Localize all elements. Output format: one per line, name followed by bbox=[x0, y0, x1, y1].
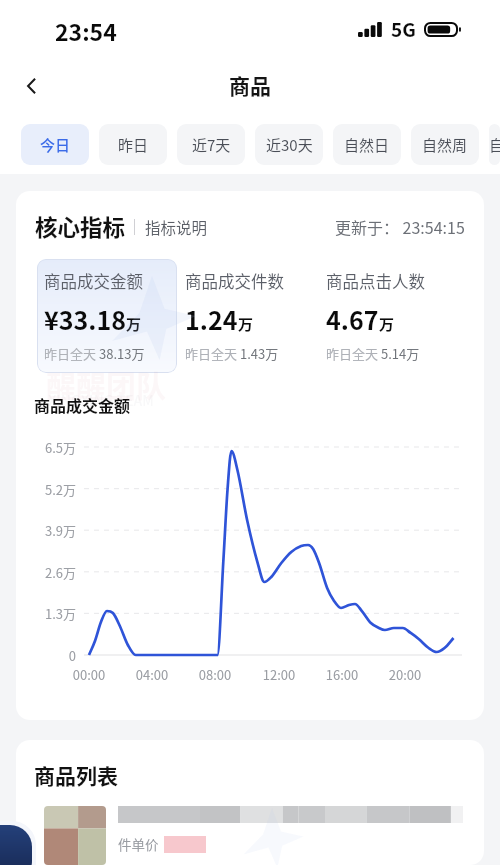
staticText: 商品成交金额 bbox=[34, 393, 131, 416]
staticText: 04:00 bbox=[130, 665, 174, 684]
button[interactable]: 近30天 bbox=[255, 124, 323, 165]
staticText: 2.6万 bbox=[16, 563, 76, 582]
staticText: 昨日全天 bbox=[185, 344, 240, 363]
staticText: 万 bbox=[126, 313, 142, 335]
staticText: 1.24 bbox=[185, 301, 238, 337]
staticText: 近7天 bbox=[192, 134, 231, 156]
button[interactable]: 近7天 bbox=[177, 124, 245, 165]
staticText: 更新于： 23:54:15 bbox=[335, 215, 465, 238]
staticText: 38.13万 bbox=[99, 344, 145, 363]
staticText: 昨日全天 bbox=[44, 344, 99, 363]
staticText: 万 bbox=[379, 313, 395, 335]
staticText: 16:00 bbox=[320, 665, 364, 684]
staticText: 3.9万 bbox=[16, 521, 76, 540]
button[interactable]: 商品成交件数 bbox=[178, 259, 319, 373]
staticText: 昨日 bbox=[118, 134, 149, 156]
staticText: 今日 bbox=[40, 134, 71, 156]
staticText: 近30天 bbox=[266, 134, 313, 156]
staticText: 08:00 bbox=[193, 665, 237, 684]
staticText: 5.14万 bbox=[381, 344, 420, 363]
staticText: 5.2万 bbox=[16, 480, 76, 499]
staticText: 商品列表 bbox=[34, 760, 118, 790]
staticText: 醒醒团队 bbox=[46, 362, 166, 405]
staticText: 商品成交件数 bbox=[185, 269, 284, 293]
button[interactable]: Back bbox=[14, 68, 50, 104]
button[interactable]: 自然月 bbox=[489, 124, 500, 165]
staticText: 核心指标 bbox=[35, 210, 126, 243]
staticText: 商品成交金额 bbox=[44, 269, 143, 293]
staticText: 0 bbox=[16, 646, 76, 665]
staticText: 自然月 bbox=[489, 134, 500, 156]
staticText: 20:00 bbox=[383, 665, 427, 684]
staticText: 商品点击人数 bbox=[326, 269, 425, 293]
button[interactable]: 自然日 bbox=[333, 124, 401, 165]
staticText: XINGXING TEAM bbox=[48, 390, 154, 410]
staticText: 自然周 bbox=[422, 134, 468, 156]
staticText: 00:00 bbox=[67, 665, 111, 684]
button[interactable]: 件单价 bbox=[44, 806, 484, 865]
button[interactable]: 今日 bbox=[21, 124, 89, 165]
staticText: ¥33.18 bbox=[44, 301, 126, 337]
button[interactable]: Assistant bbox=[0, 825, 32, 865]
button[interactable]: 指标说明 bbox=[145, 216, 208, 238]
staticText: 5G bbox=[391, 15, 416, 43]
staticText: 12:00 bbox=[257, 665, 301, 684]
staticText: 1.43万 bbox=[240, 344, 279, 363]
staticText: 6.5万 bbox=[16, 438, 76, 457]
button[interactable]: 商品成交金额 bbox=[37, 259, 177, 373]
button[interactable]: 自然周 bbox=[411, 124, 479, 165]
staticText: 自然日 bbox=[344, 134, 390, 156]
staticText: 1.3万 bbox=[16, 604, 76, 623]
staticText: 商品 bbox=[229, 70, 271, 100]
staticText: 昨日全天 bbox=[326, 344, 381, 363]
staticText: 4.67 bbox=[326, 301, 379, 337]
button[interactable]: 昨日 bbox=[99, 124, 167, 165]
staticText: 万 bbox=[238, 313, 254, 335]
button[interactable]: 商品点击人数 bbox=[319, 259, 460, 373]
staticText: 23:54 bbox=[55, 14, 117, 47]
staticText: 件单价 bbox=[118, 834, 159, 854]
